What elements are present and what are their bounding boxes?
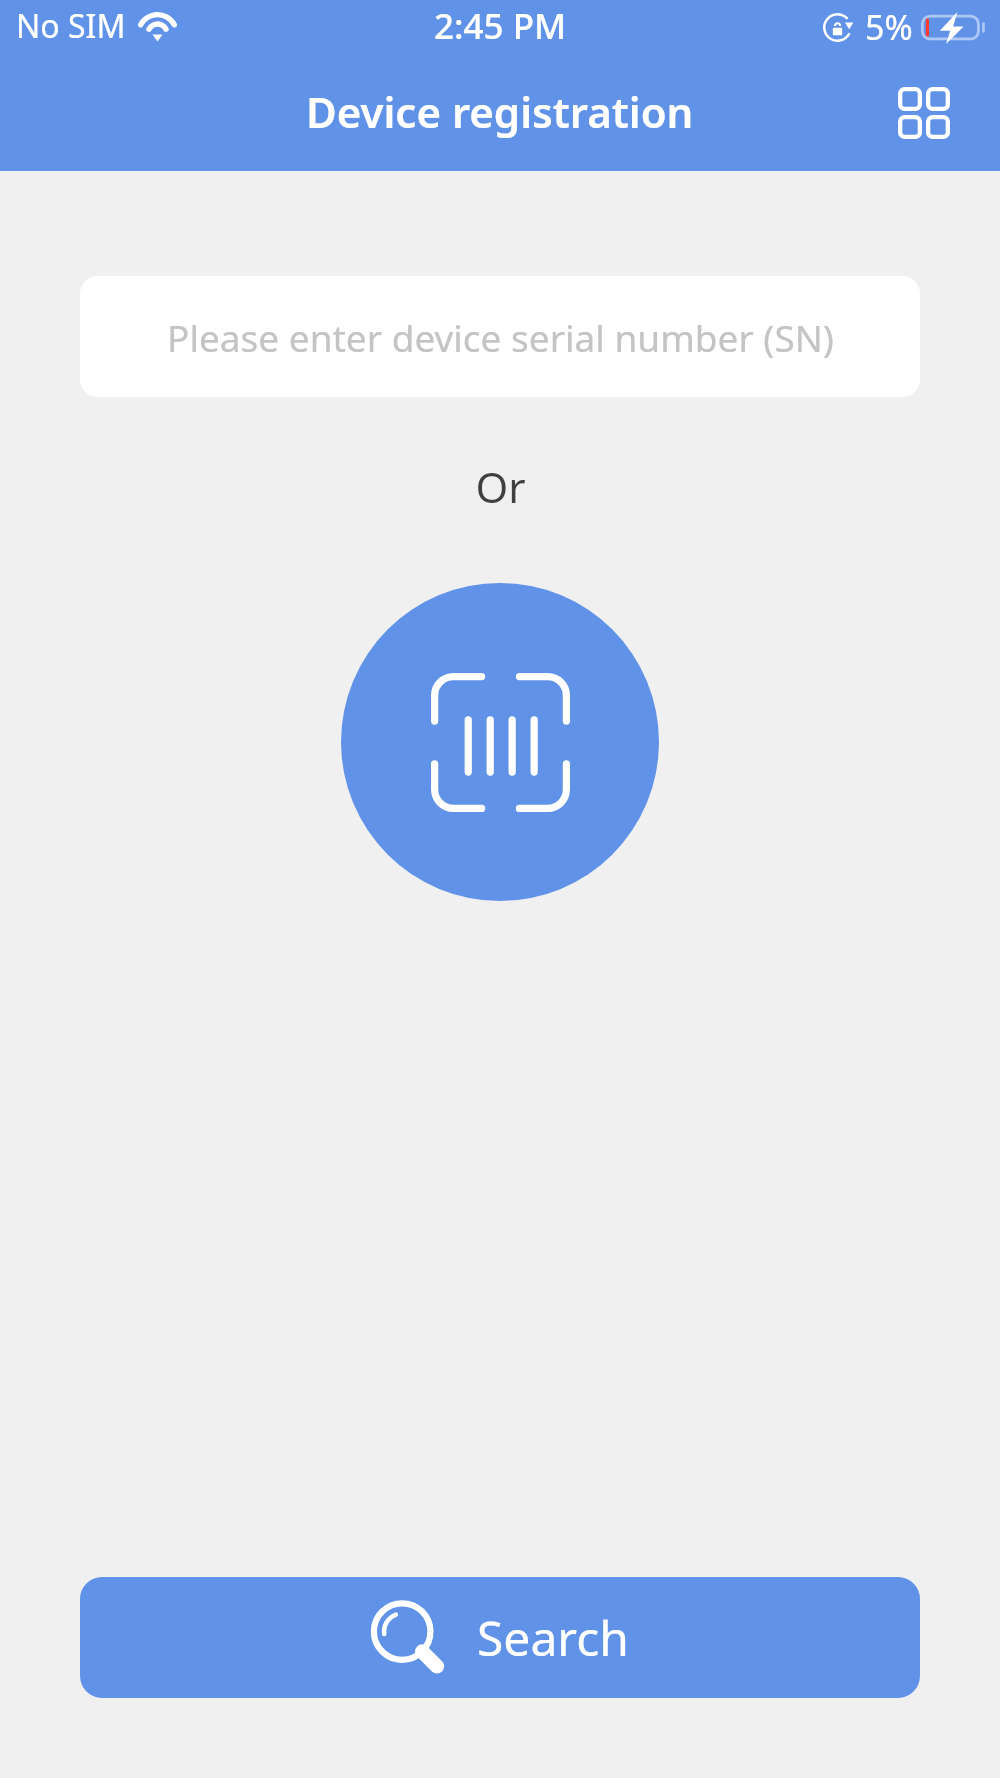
button[interactable]: Search xyxy=(80,1577,920,1698)
staticText: Search xyxy=(477,1605,629,1670)
button[interactable]: Scan barcode xyxy=(341,583,659,901)
button[interactable]: Please enter device serial number (SN) xyxy=(80,276,920,397)
staticText: 2:45 PM xyxy=(434,2,567,50)
staticText: 5% xyxy=(865,4,913,50)
staticText: Or xyxy=(475,458,526,515)
staticText: No SIM xyxy=(16,4,126,48)
button[interactable]: Grid menu xyxy=(892,81,956,145)
staticText: Please enter device serial number (SN) xyxy=(167,312,834,362)
staticText: Device registration xyxy=(306,83,694,140)
